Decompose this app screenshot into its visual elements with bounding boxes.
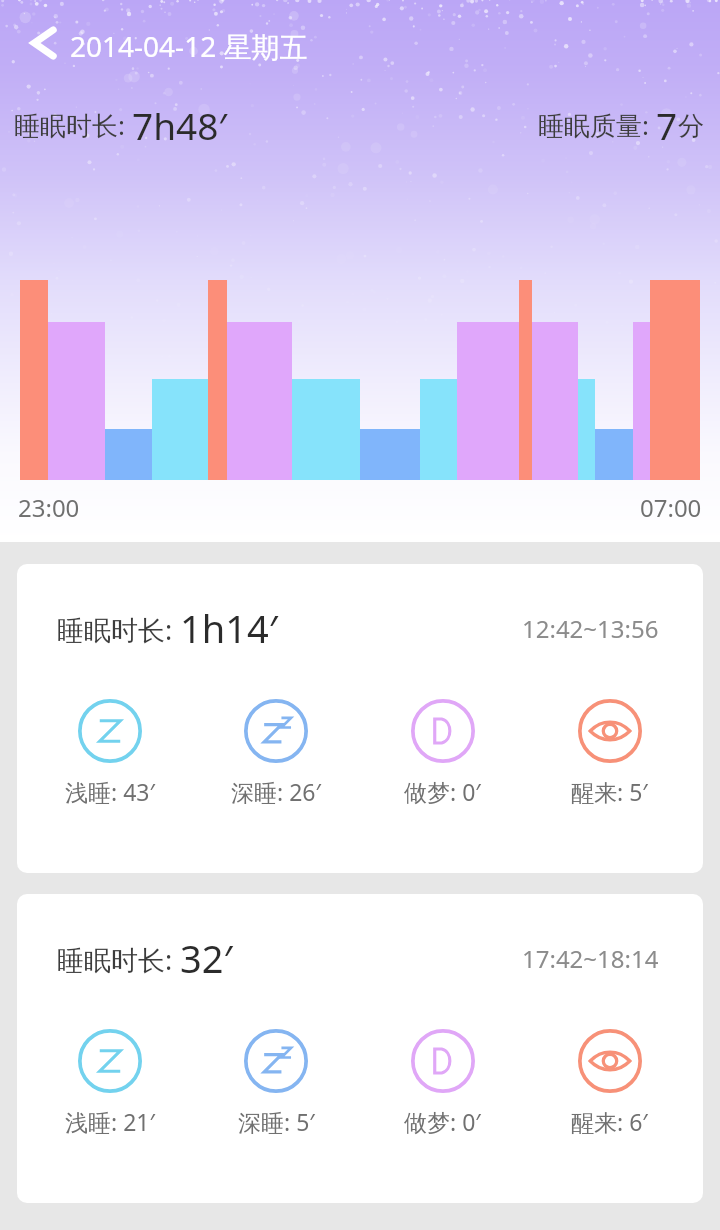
staticText: 2014-04-12 星期五 <box>70 27 308 65</box>
staticText: 睡眠时长: <box>14 107 132 143</box>
staticText: 浅睡: 21′ <box>65 1106 155 1137</box>
staticText: 32′ <box>180 932 233 984</box>
staticText: 07:00 <box>640 491 702 524</box>
staticText: 睡眠时长: <box>57 611 180 648</box>
button[interactable]: Back <box>8 12 70 74</box>
button[interactable]: 睡眠时长: <box>17 894 703 1203</box>
staticText: 睡眠质量: <box>538 107 656 143</box>
staticText: 7 <box>656 100 678 150</box>
staticText: 17:42~18:14 <box>522 942 659 975</box>
staticText: 深睡: 26′ <box>231 776 321 807</box>
staticText: 23:00 <box>18 491 80 524</box>
staticText: 醒来: 5′ <box>571 776 648 807</box>
staticText: 分 <box>678 110 704 143</box>
staticText: 睡眠时长: <box>57 941 180 978</box>
staticText: 深睡: 5′ <box>238 1106 315 1137</box>
staticText: 做梦: 0′ <box>404 776 481 807</box>
staticText: 1h14′ <box>180 602 278 654</box>
staticText: 醒来: 6′ <box>571 1106 648 1137</box>
button[interactable]: 睡眠时长: <box>17 564 703 873</box>
staticText: 做梦: 0′ <box>404 1106 481 1137</box>
staticText: 浅睡: 43′ <box>65 776 155 807</box>
staticText: 12:42~13:56 <box>522 612 659 645</box>
staticText: 7h48′ <box>132 100 227 150</box>
